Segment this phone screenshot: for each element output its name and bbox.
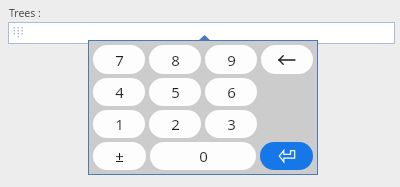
other: Open numeric keypad <box>12 26 25 39</box>
button[interactable]: 3 <box>205 110 257 138</box>
staticText: 9 <box>227 50 236 70</box>
staticText: 7 <box>115 50 124 70</box>
staticText: 1 <box>115 114 124 134</box>
button[interactable]: Open numeric keypad <box>8 22 395 44</box>
staticText: 4 <box>115 82 124 102</box>
button[interactable]: 5 <box>149 78 201 106</box>
staticText: ± <box>115 146 124 166</box>
button[interactable]: 7 <box>93 45 145 74</box>
staticText: Trees : <box>9 6 41 20</box>
staticText: 3 <box>227 114 236 134</box>
button[interactable]: 9 <box>205 45 257 74</box>
staticText: 6 <box>227 82 236 102</box>
button[interactable]: 0 <box>150 142 256 170</box>
staticText: 8 <box>171 50 180 70</box>
button[interactable]: 2 <box>149 110 201 138</box>
staticText: 2 <box>171 114 180 134</box>
button[interactable]: ± <box>93 142 146 170</box>
button[interactable]: Backspace <box>261 45 313 74</box>
button[interactable]: Enter <box>260 142 313 170</box>
button[interactable]: 6 <box>205 78 257 106</box>
staticText: 5 <box>171 82 180 102</box>
button[interactable]: 4 <box>93 78 145 106</box>
button[interactable]: 1 <box>93 110 145 138</box>
button[interactable]: 8 <box>149 45 201 74</box>
staticText: 0 <box>199 146 208 166</box>
